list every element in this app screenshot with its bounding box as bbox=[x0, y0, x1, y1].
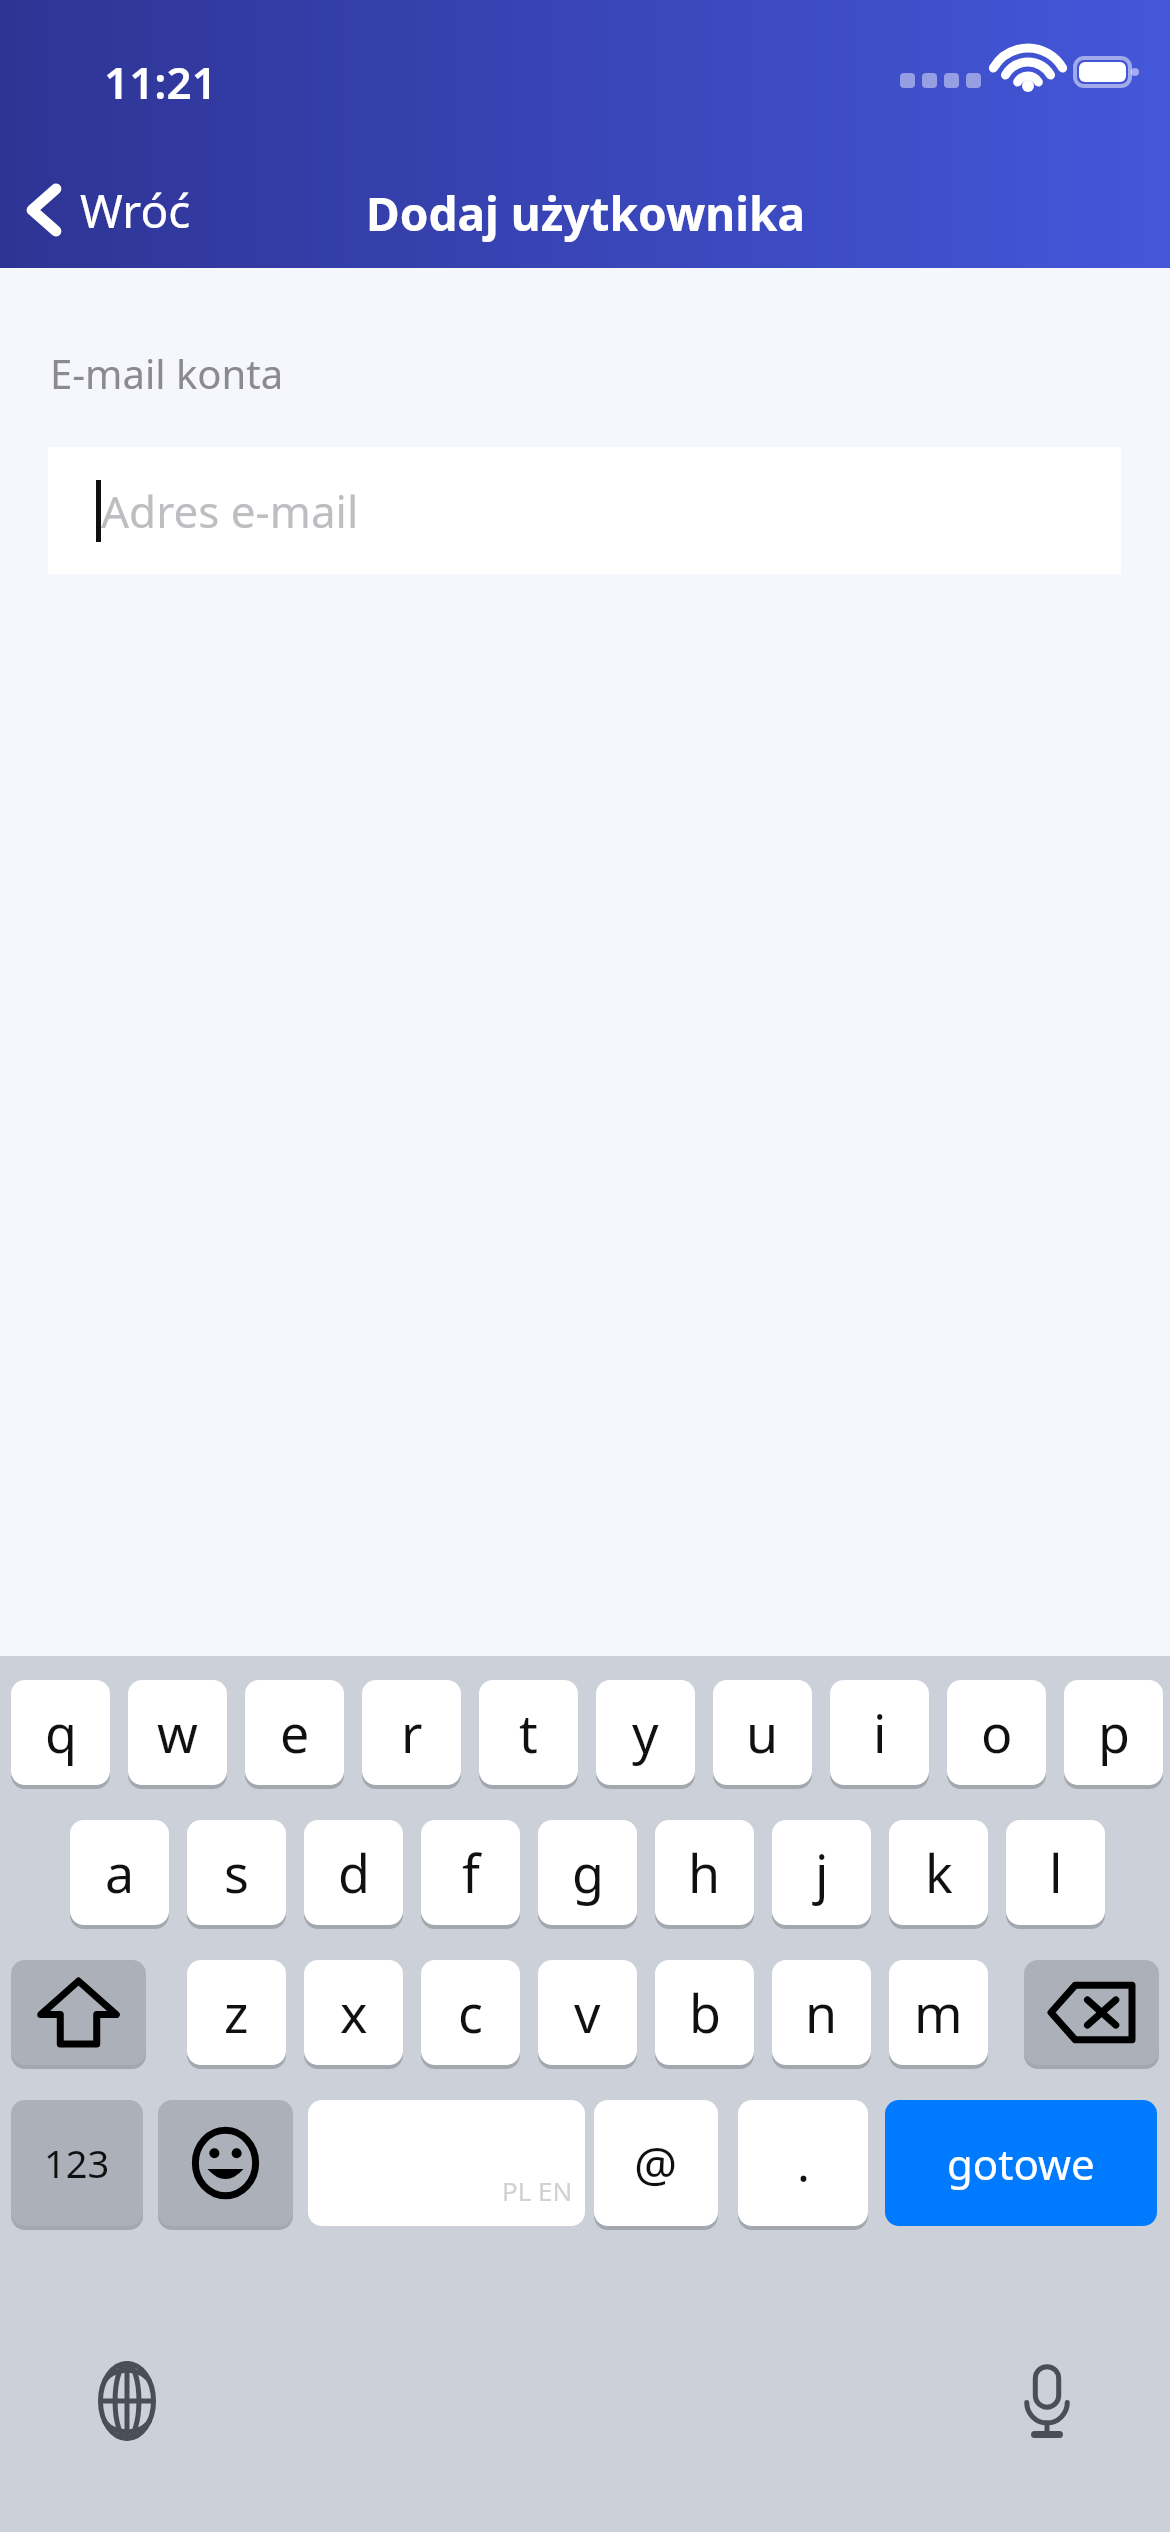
staticText: gotowe bbox=[947, 2135, 1095, 2192]
staticText: h bbox=[688, 1837, 721, 1908]
button[interactable]: x bbox=[304, 1960, 403, 2065]
button[interactable]: l bbox=[1006, 1820, 1105, 1925]
staticText: e bbox=[280, 1697, 310, 1768]
button[interactable]: Dictation bbox=[992, 2346, 1102, 2456]
staticText: . bbox=[797, 2131, 810, 2196]
button[interactable]: c bbox=[421, 1960, 520, 2065]
button[interactable]: a bbox=[70, 1820, 169, 1925]
staticText: g bbox=[572, 1837, 604, 1908]
staticText: 123 bbox=[44, 2137, 110, 2189]
button[interactable]: gotowe bbox=[885, 2100, 1157, 2226]
button[interactable]: r bbox=[362, 1680, 461, 1785]
button[interactable]: z bbox=[187, 1960, 286, 2065]
button[interactable]: Adres e-mail bbox=[48, 447, 1121, 574]
button[interactable]: Emoji bbox=[158, 2100, 293, 2226]
button[interactable]: y bbox=[596, 1680, 695, 1785]
staticText: Adres e-mail bbox=[101, 481, 359, 541]
staticText: Dodaj użytkownika bbox=[366, 182, 805, 245]
button[interactable]: n bbox=[772, 1960, 871, 2065]
staticText: d bbox=[338, 1837, 370, 1908]
button[interactable]: j bbox=[772, 1820, 871, 1925]
button[interactable]: . bbox=[738, 2100, 868, 2226]
button[interactable]: h bbox=[655, 1820, 754, 1925]
staticText: PL EN bbox=[502, 2173, 573, 2208]
staticText: r bbox=[401, 1697, 423, 1768]
button[interactable]: @ bbox=[594, 2100, 718, 2226]
button[interactable]: q bbox=[11, 1680, 110, 1785]
staticText: s bbox=[224, 1837, 249, 1908]
staticText: @ bbox=[634, 2131, 678, 2196]
button[interactable]: k bbox=[889, 1820, 988, 1925]
button[interactable]: u bbox=[713, 1680, 812, 1785]
button[interactable]: v bbox=[538, 1960, 637, 2065]
staticText: m bbox=[914, 1977, 963, 2048]
button[interactable]: p bbox=[1064, 1680, 1163, 1785]
staticText: o bbox=[981, 1697, 1013, 1768]
button[interactable]: b bbox=[655, 1960, 754, 2065]
staticText: k bbox=[925, 1837, 953, 1908]
button[interactable]: t bbox=[479, 1680, 578, 1785]
button[interactable]: w bbox=[128, 1680, 227, 1785]
button[interactable]: s bbox=[187, 1820, 286, 1925]
staticText: 11:21 bbox=[104, 52, 217, 112]
button[interactable]: g bbox=[538, 1820, 637, 1925]
button[interactable]: Change keyboard bbox=[72, 2346, 182, 2456]
staticText: c bbox=[458, 1977, 483, 2048]
staticText: Wróć bbox=[80, 179, 191, 242]
button[interactable]: Wróć bbox=[10, 168, 209, 252]
staticText: t bbox=[519, 1697, 538, 1768]
staticText: j bbox=[815, 1837, 829, 1908]
button[interactable]: Space bbox=[308, 2100, 585, 2226]
staticText: u bbox=[746, 1697, 779, 1768]
button[interactable]: 123 bbox=[11, 2100, 143, 2226]
staticText: a bbox=[105, 1837, 135, 1908]
staticText: f bbox=[462, 1837, 480, 1908]
button[interactable]: Shift bbox=[11, 1960, 146, 2065]
staticText: y bbox=[632, 1697, 659, 1768]
staticText: p bbox=[1098, 1697, 1130, 1768]
button[interactable]: m bbox=[889, 1960, 988, 2065]
button[interactable]: i bbox=[830, 1680, 929, 1785]
staticText: b bbox=[689, 1977, 721, 2048]
button[interactable]: d bbox=[304, 1820, 403, 1925]
staticText: n bbox=[805, 1977, 838, 2048]
staticText: w bbox=[157, 1697, 198, 1768]
staticText: l bbox=[1049, 1837, 1063, 1908]
staticText: x bbox=[340, 1977, 368, 2048]
button[interactable]: Backspace bbox=[1024, 1960, 1159, 2065]
staticText: z bbox=[224, 1977, 249, 2048]
staticText: i bbox=[873, 1697, 887, 1768]
button[interactable]: f bbox=[421, 1820, 520, 1925]
button[interactable]: e bbox=[245, 1680, 344, 1785]
button[interactable]: o bbox=[947, 1680, 1046, 1785]
staticText: E-mail konta bbox=[50, 346, 284, 400]
staticText: q bbox=[45, 1697, 77, 1768]
staticText: v bbox=[574, 1977, 601, 2048]
